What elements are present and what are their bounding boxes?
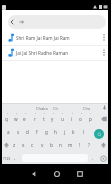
staticText: ? [88,142,90,148]
button[interactable]: v [39,141,46,149]
button[interactable]: j [61,128,68,136]
button[interactable] [53,170,61,178]
button[interactable]: p [87,115,94,123]
staticText: Shri Ram Jai Ram Jai Ram [16,35,70,41]
staticText: z [13,142,16,148]
staticText: b [50,142,53,148]
staticText: g [45,129,48,135]
button[interactable]: Chaka [35,105,49,112]
button[interactable] [30,170,38,178]
button[interactable]: Shri Ram Jai Ram Jai Ram [2,30,108,45]
button[interactable]: t [40,115,47,123]
button[interactable]: y [49,115,56,123]
button[interactable]: Ch [51,105,59,112]
staticText: Chaka [36,106,48,111]
button[interactable]: x [20,141,27,149]
staticText: c [31,142,34,148]
staticText: q [5,116,8,122]
button[interactable] [76,170,84,178]
staticText: Ch [53,106,58,111]
staticText: j [64,129,66,135]
staticText: d [26,129,29,135]
staticText: m [68,142,73,148]
staticText: x [22,142,25,148]
button[interactable]: f [33,128,40,136]
button[interactable]: , [12,154,18,162]
button[interactable]: g [43,128,50,136]
staticText: e [23,116,26,122]
staticText: t [43,116,45,122]
staticText: Cha [83,106,91,111]
button[interactable]: ! [76,141,83,149]
staticText: l [83,129,85,135]
staticText: a [7,129,10,135]
button[interactable] [8,15,106,29]
button[interactable] [99,154,108,163]
button[interactable]: q [3,115,10,123]
button[interactable]: Jai Jai Shri Radhe Raman [2,45,108,60]
button[interactable]: . [90,154,96,162]
button[interactable]: a [5,128,12,136]
button[interactable]: ?123 [2,154,11,162]
staticText: o [79,116,82,122]
button[interactable]: z [11,141,18,149]
staticText: u [61,116,64,122]
staticText: p [89,116,92,122]
button[interactable]: m [67,141,74,149]
button[interactable]: d [24,128,31,136]
staticText: r [34,116,36,122]
button[interactable]: s [15,128,22,136]
staticText: Jai Jai Shri Radhe Raman [16,50,69,56]
button[interactable]: Cha [82,105,92,112]
staticText: f [36,129,38,135]
staticText: v [41,142,44,148]
button[interactable] [99,141,108,149]
staticText: i [71,116,73,122]
button[interactable]: e [21,115,28,123]
button[interactable]: u [59,115,66,123]
button[interactable] [99,115,108,123]
button[interactable]: w [12,115,19,123]
staticText: h [54,129,57,135]
button[interactable]: c [29,141,36,149]
button[interactable]: b [48,141,55,149]
staticText: n [59,142,62,148]
button[interactable]: l [80,128,87,136]
button[interactable]: ? [85,141,92,149]
staticText: ! [79,142,81,148]
staticText: k [72,129,75,135]
button[interactable]: r [31,115,38,123]
button[interactable] [94,129,104,139]
button[interactable] [2,141,11,149]
button[interactable]: h [52,128,59,136]
button[interactable]: i [68,115,75,123]
button[interactable]: n [57,141,64,149]
button[interactable]: o [77,115,84,123]
button[interactable]: k [70,128,77,136]
staticText: ?123 [3,156,11,161]
staticText: w [14,116,18,122]
staticText: , [14,155,16,161]
staticText: s [17,129,20,135]
staticText: y [51,116,54,122]
staticText: . [92,155,94,161]
